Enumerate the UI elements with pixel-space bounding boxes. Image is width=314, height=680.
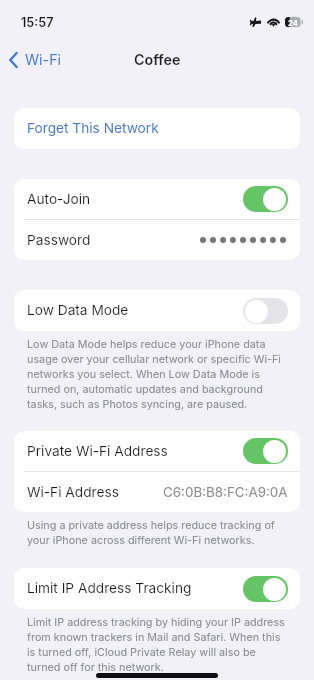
staticText: C6:0B:B8:FC:A9:0A <box>163 484 288 500</box>
staticText: Low Data Mode helps reduce your iPhone d… <box>27 338 285 410</box>
staticText: 15:57 <box>21 15 54 30</box>
button[interactable]: Auto-Join toggle <box>243 186 288 212</box>
other: Wi-Fi signal <box>267 17 280 26</box>
button[interactable]: Low Data Mode toggle <box>243 298 288 324</box>
staticText: Password <box>27 232 91 249</box>
staticText: Limit IP Address Tracking <box>27 580 192 597</box>
staticText: 24 <box>288 18 299 27</box>
button[interactable]: Private Wi-Fi Address <box>14 431 300 471</box>
other: Airplane mode <box>250 17 261 27</box>
button[interactable]: Wi-Fi Address <box>14 472 300 512</box>
staticText: Wi-Fi <box>25 51 62 68</box>
button[interactable]: Low Data Mode <box>14 290 300 331</box>
button[interactable]: Wi-Fi <box>0 45 70 74</box>
staticText: Wi-Fi Address <box>27 484 119 501</box>
button[interactable]: Private Wi-Fi Address toggle <box>243 438 288 464</box>
staticText: Forget This Network <box>27 120 159 137</box>
staticText: Limit IP address tracking by hiding your… <box>27 616 285 673</box>
staticText: Coffee <box>134 51 181 68</box>
other: Battery 24 percent <box>285 17 303 27</box>
staticText: Using a private address helps reduce tra… <box>27 519 285 546</box>
button[interactable]: Password <box>14 220 300 260</box>
button[interactable]: Forget This Network <box>14 108 300 149</box>
button[interactable]: Auto-Join <box>14 179 300 219</box>
staticText: Low Data Mode <box>27 302 129 319</box>
staticText: Private Wi-Fi Address <box>27 443 168 460</box>
staticText: Auto-Join <box>27 191 91 208</box>
button[interactable]: Limit IP Address Tracking toggle <box>243 576 288 602</box>
button[interactable]: Limit IP Address Tracking <box>14 568 300 609</box>
